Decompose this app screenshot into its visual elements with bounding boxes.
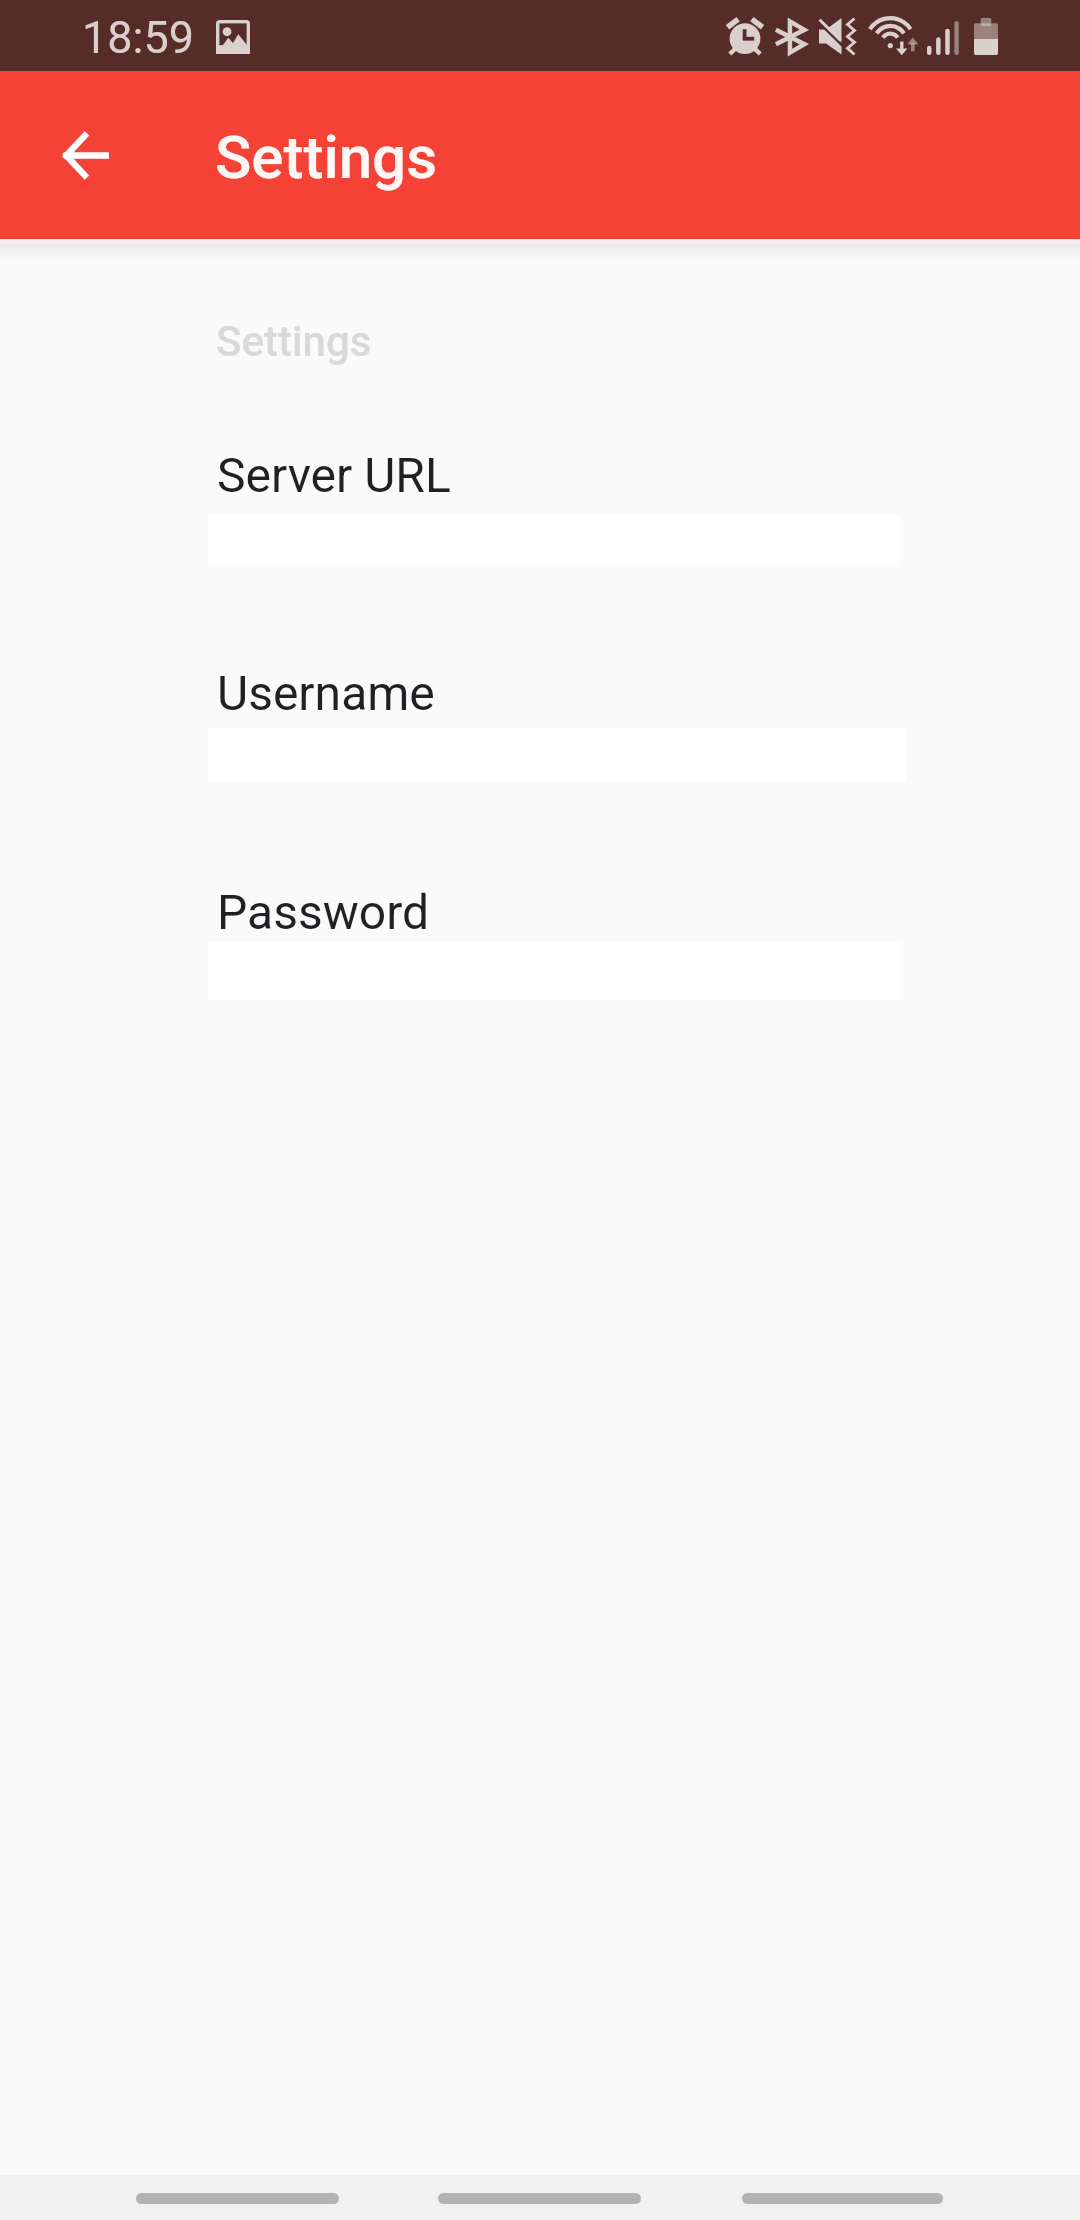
button[interactable]: Navigate up (28, 99, 140, 211)
button[interactable]: Back (108, 2175, 367, 2220)
staticText: Username (217, 665, 435, 721)
staticText: Server URL (217, 447, 451, 503)
button[interactable]: Recent apps (714, 2175, 971, 2220)
button[interactable]: Home (410, 2175, 669, 2220)
staticText: Settings (216, 317, 372, 366)
staticText: 18:59 (82, 11, 195, 64)
staticText: Password (217, 884, 430, 940)
staticText: Settings (215, 122, 438, 192)
